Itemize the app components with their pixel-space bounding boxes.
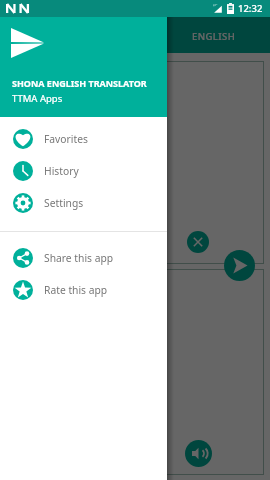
button[interactable]: Rate this app [0, 274, 167, 306]
button[interactable]: Settings [0, 187, 167, 219]
button[interactable]: History [0, 155, 167, 187]
staticText: TTMA Apps [12, 92, 63, 105]
staticText: 12:32 [238, 2, 263, 15]
staticText: Share this app [44, 251, 114, 265]
staticText: Rate this app [44, 283, 108, 297]
staticText: Favorites [44, 132, 88, 146]
staticText: History [44, 164, 79, 178]
button[interactable]: Speak [185, 440, 212, 467]
button[interactable]: Favorites [0, 123, 167, 155]
staticText: SHONA ENGLISH TRANSLATOR [12, 77, 147, 89]
button[interactable]: Clear [187, 231, 209, 253]
staticText: ENGLISH [192, 30, 236, 43]
staticText: Settings [44, 196, 84, 210]
button[interactable]: Translate [224, 250, 255, 281]
button[interactable]: Share this app [0, 242, 167, 274]
